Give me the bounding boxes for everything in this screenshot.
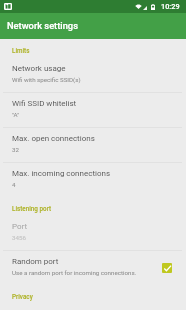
staticText: Port (12, 222, 28, 231)
staticText: 32 (12, 146, 19, 153)
staticText: 4 (12, 181, 16, 188)
other: App icon (4, 3, 12, 10)
button[interactable]: Random port (0, 251, 186, 285)
staticText: Max. open connections (12, 134, 95, 143)
staticText: Max. incoming connections (12, 169, 111, 178)
button[interactable]: Max. incoming connections (0, 163, 186, 197)
button[interactable]: Wifi SSID whitelist (0, 93, 186, 127)
staticText: "A" (12, 111, 20, 118)
staticText: Use a random port for incoming connectio… (12, 269, 137, 276)
staticText: Random port (12, 257, 59, 266)
staticText: Wifi SSID whitelist (12, 99, 77, 108)
staticText: 3456 (12, 234, 26, 241)
staticText: Privacy (12, 293, 33, 300)
staticText: Wifi with specific SSID(s) (12, 76, 81, 83)
staticText: Network usage (12, 64, 66, 73)
button[interactable]: Network usage (0, 58, 186, 92)
button[interactable]: Max. open connections (0, 128, 186, 162)
other: Random port checkbox, checked (162, 263, 172, 273)
staticText: 10:29 (161, 2, 180, 11)
staticText: Network settings (7, 20, 78, 31)
staticText: Limits (12, 47, 30, 54)
button[interactable]: Port (0, 216, 186, 250)
staticText: Listening port (12, 205, 52, 212)
